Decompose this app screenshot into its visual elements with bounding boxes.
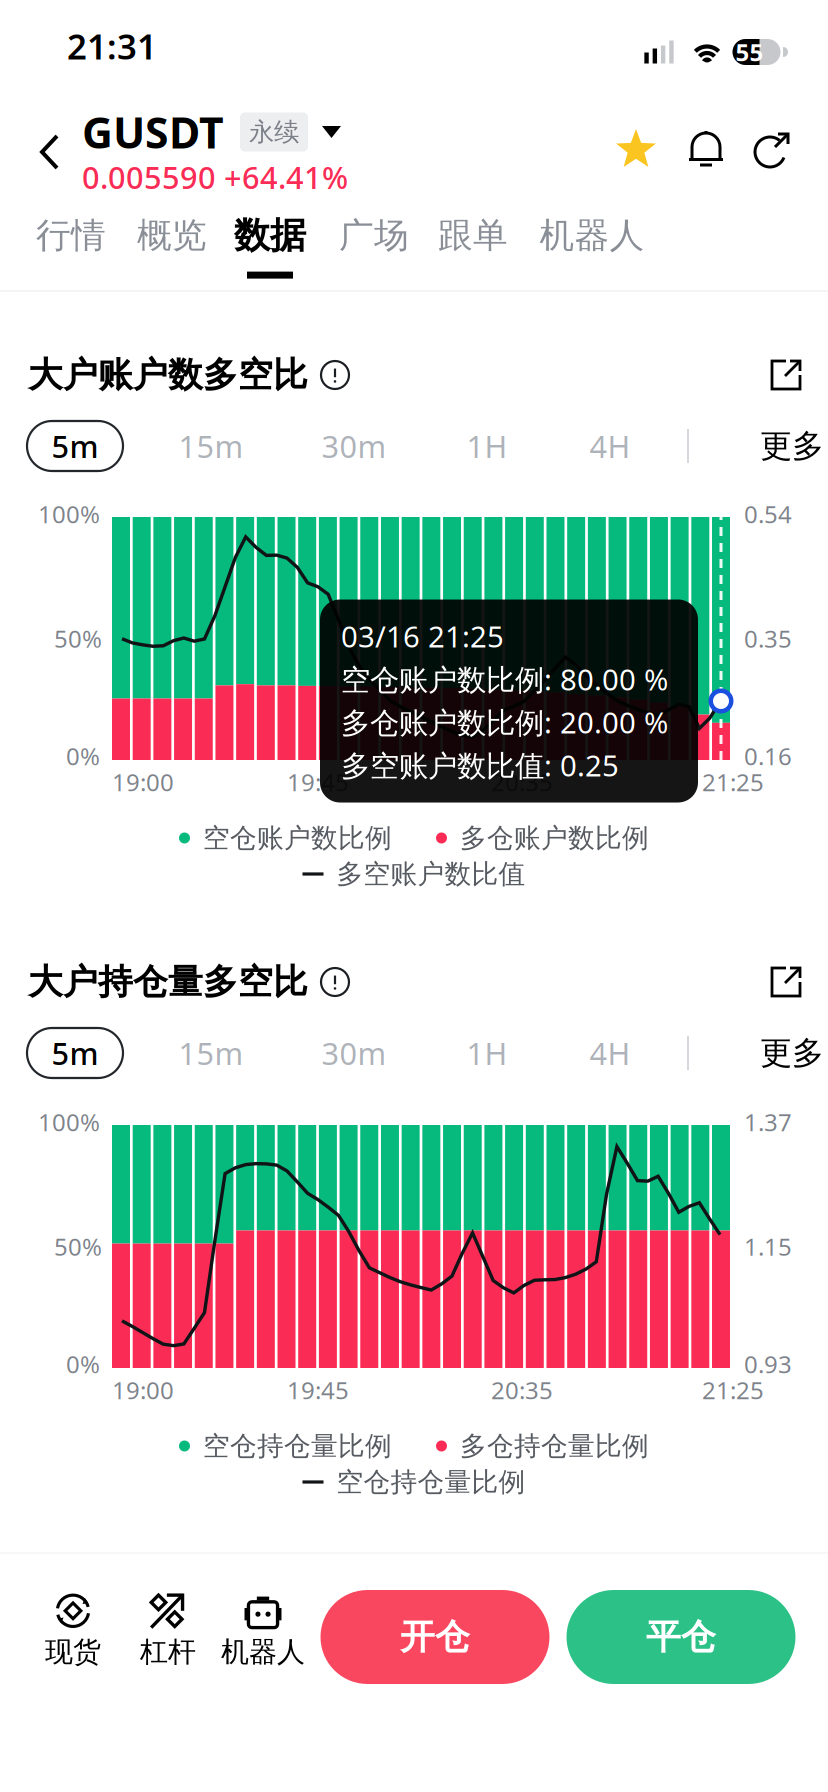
staticText: 20:35 xyxy=(491,1374,553,1406)
button[interactable]: 跟单 xyxy=(438,207,508,285)
button[interactable]: 杠杆 xyxy=(140,1591,196,1669)
staticText: 多空账户数比值 xyxy=(336,858,525,890)
button[interactable]: Back xyxy=(19,112,81,192)
staticText: 1.15 xyxy=(744,1231,792,1262)
staticText: 机器人 xyxy=(539,214,644,257)
button[interactable]: Favourite xyxy=(614,129,658,171)
staticText: 0.93 xyxy=(744,1348,792,1380)
staticText: 平仓 xyxy=(646,1616,716,1658)
staticText: 0.16 xyxy=(744,740,792,772)
staticText: 5m xyxy=(51,1033,98,1073)
button[interactable]: 更多 xyxy=(742,1028,828,1078)
staticText: 空仓账户数比例 xyxy=(203,822,392,854)
staticText: 5m xyxy=(51,426,98,466)
button[interactable]: 机器人 xyxy=(539,207,644,285)
staticText: 19:00 xyxy=(112,766,174,798)
staticText: 空仓账户数比例: 80.00 % xyxy=(341,659,668,698)
staticText: 19:00 xyxy=(112,1374,174,1406)
staticText: 21:25 xyxy=(702,766,764,798)
button[interactable]: Share xyxy=(752,129,792,171)
button[interactable]: 行情 xyxy=(36,207,106,285)
staticText: 20:35 xyxy=(491,766,553,798)
staticText: 21:31 xyxy=(67,23,157,69)
staticText: 广场 xyxy=(339,214,409,257)
staticText: 多仓账户数比例 xyxy=(460,822,649,854)
staticText: 55 xyxy=(735,36,763,68)
button[interactable]: 机器人 xyxy=(221,1591,305,1669)
staticText: 15m xyxy=(178,426,243,466)
staticText: 21:25 xyxy=(702,1374,764,1406)
button[interactable]: 30m xyxy=(308,421,400,471)
staticText: 行情 xyxy=(36,214,106,257)
button[interactable]: 概览 xyxy=(137,207,207,285)
staticText: 4H xyxy=(589,1033,630,1073)
button[interactable]: 更多 xyxy=(742,421,828,471)
button[interactable]: 5m xyxy=(27,1028,123,1078)
button[interactable]: 4H xyxy=(564,1028,656,1078)
staticText: GUSDT xyxy=(82,104,224,160)
button[interactable]: Price alert xyxy=(687,129,725,171)
staticText: 数据 xyxy=(234,213,306,258)
staticText: 1.37 xyxy=(744,1106,792,1138)
staticText: 更多 xyxy=(760,426,824,466)
button[interactable]: 30m xyxy=(308,1028,400,1078)
staticText: 大户账户数多空比 xyxy=(28,354,308,396)
staticText: 19:45 xyxy=(287,1374,349,1406)
button[interactable]: Expand chart xyxy=(766,962,806,1002)
button[interactable]: 15m xyxy=(165,1028,257,1078)
staticText: 50% xyxy=(54,1231,102,1262)
staticText: 30m xyxy=(321,1033,386,1073)
staticText: 空仓持仓量比例 xyxy=(336,1466,525,1498)
staticText: 03/16 21:25 xyxy=(341,616,504,655)
staticText: 19:45 xyxy=(287,766,349,798)
staticText: 30m xyxy=(321,426,386,466)
button[interactable]: 1H xyxy=(441,421,533,471)
staticText: 概览 xyxy=(137,214,207,257)
button[interactable]: 5m xyxy=(27,421,123,471)
button[interactable]: 平仓 xyxy=(566,1590,795,1684)
staticText: 更多 xyxy=(760,1033,824,1073)
staticText: 0.005590 +64.41% xyxy=(82,157,348,197)
staticText: 4H xyxy=(589,426,630,466)
button[interactable]: 数据 xyxy=(234,207,306,285)
button[interactable]: Expand chart xyxy=(766,355,806,395)
staticText: 杠杆 xyxy=(140,1635,196,1669)
button[interactable]: 现货 xyxy=(45,1591,101,1669)
staticText: 1H xyxy=(466,1033,507,1073)
staticText: 15m xyxy=(178,1033,243,1073)
button[interactable]: 开仓 xyxy=(320,1590,549,1684)
staticText: 多仓账户数比例: 20.00 % xyxy=(341,702,668,741)
staticText: 开仓 xyxy=(400,1616,470,1658)
button[interactable]: 15m xyxy=(165,421,257,471)
staticText: 0% xyxy=(66,740,100,772)
staticText: 多仓持仓量比例 xyxy=(460,1430,649,1462)
staticText: 机器人 xyxy=(221,1635,305,1669)
staticText: 0.54 xyxy=(744,498,792,530)
staticText: 50% xyxy=(54,623,102,654)
staticText: 100% xyxy=(38,498,100,530)
button[interactable]: 1H xyxy=(441,1028,533,1078)
staticText: 跟单 xyxy=(438,214,508,257)
staticText: 1H xyxy=(466,426,507,466)
staticText: 永续 xyxy=(249,116,299,147)
staticText: 0% xyxy=(66,1348,100,1380)
staticText: 0.35 xyxy=(744,623,792,654)
staticText: 现货 xyxy=(45,1635,101,1669)
staticText: 大户持仓量多空比 xyxy=(28,961,308,1003)
button[interactable]: 4H xyxy=(564,421,656,471)
staticText: 100% xyxy=(38,1106,100,1138)
staticText: 空仓持仓量比例 xyxy=(203,1430,392,1462)
staticText: 多空账户数比值: 0.25 xyxy=(341,745,619,784)
button[interactable]: 广场 xyxy=(339,207,409,285)
